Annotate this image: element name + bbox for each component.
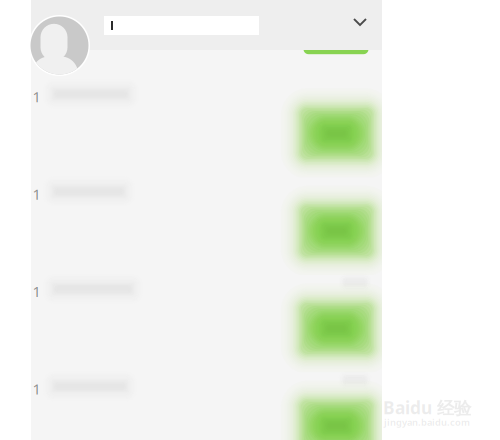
button[interactable]: Sign in <box>281 381 392 440</box>
staticText: 1 <box>32 379 40 399</box>
button[interactable]: Sign in <box>281 283 392 374</box>
staticText: jingyan.baidu.com <box>384 416 470 428</box>
staticText: 1 <box>32 87 40 106</box>
staticText: 1 <box>32 184 40 204</box>
staticText: Baidu 经验 <box>383 396 471 419</box>
button[interactable]: Sign in <box>281 88 392 179</box>
button[interactable]: Expand <box>348 10 372 34</box>
button[interactable] <box>104 16 259 35</box>
button[interactable]: Sign in <box>303 12 368 54</box>
staticText: 1 <box>32 282 40 301</box>
button[interactable]: Sign in <box>281 186 392 276</box>
